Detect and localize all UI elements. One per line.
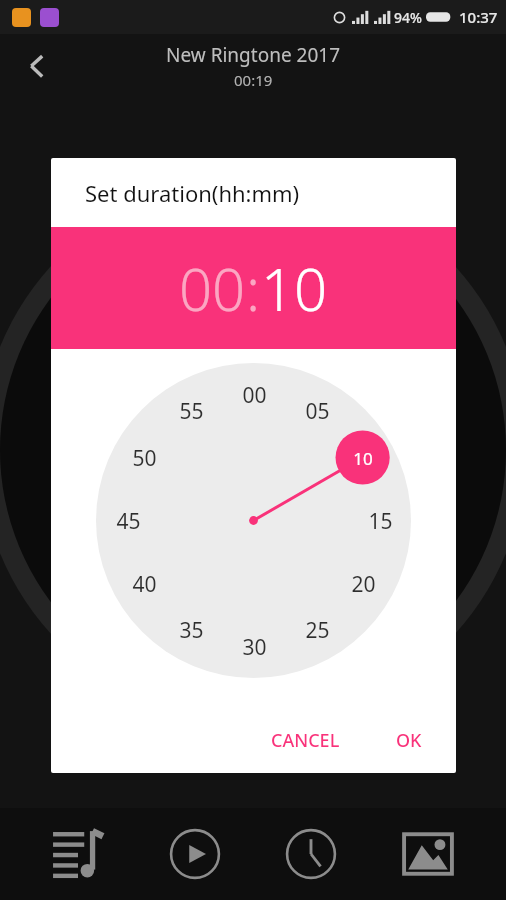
staticText: 10:37 bbox=[459, 7, 498, 27]
button[interactable]: CANCEL bbox=[257, 720, 354, 761]
button[interactable]: OK bbox=[382, 720, 436, 761]
staticText: 35 bbox=[179, 616, 204, 645]
button[interactable]: 00 bbox=[179, 249, 246, 328]
staticText: 05 bbox=[305, 397, 330, 426]
staticText: 10 bbox=[353, 447, 373, 470]
staticText: 00 bbox=[179, 249, 246, 328]
button[interactable]: Back bbox=[14, 43, 60, 89]
button[interactable]: Timer bbox=[273, 816, 349, 892]
button[interactable]: 10 bbox=[261, 249, 328, 328]
staticText: 30 bbox=[242, 633, 267, 662]
staticText: New Ringtone 2017 bbox=[166, 42, 341, 68]
staticText: 10 bbox=[261, 249, 328, 328]
staticText: 50 bbox=[132, 444, 157, 473]
staticText: 20 bbox=[351, 570, 376, 599]
button[interactable]: Artwork bbox=[390, 816, 466, 892]
staticText: 94% bbox=[394, 8, 422, 27]
staticText: OK bbox=[396, 728, 422, 753]
staticText: 00 bbox=[242, 381, 267, 410]
staticText: 15 bbox=[368, 507, 393, 536]
staticText: 25 bbox=[305, 616, 330, 645]
staticText: Set duration(hh:mm) bbox=[85, 178, 300, 208]
staticText: 45 bbox=[116, 507, 141, 536]
staticText: 00:19 bbox=[234, 70, 273, 90]
staticText: : bbox=[246, 249, 261, 328]
button[interactable]: Playlist bbox=[40, 816, 116, 892]
staticText: 40 bbox=[132, 570, 157, 599]
button[interactable]: Minute picker bbox=[96, 363, 411, 678]
button[interactable]: Play bbox=[157, 816, 233, 892]
staticText: CANCEL bbox=[271, 728, 340, 753]
staticText: 55 bbox=[179, 397, 204, 426]
